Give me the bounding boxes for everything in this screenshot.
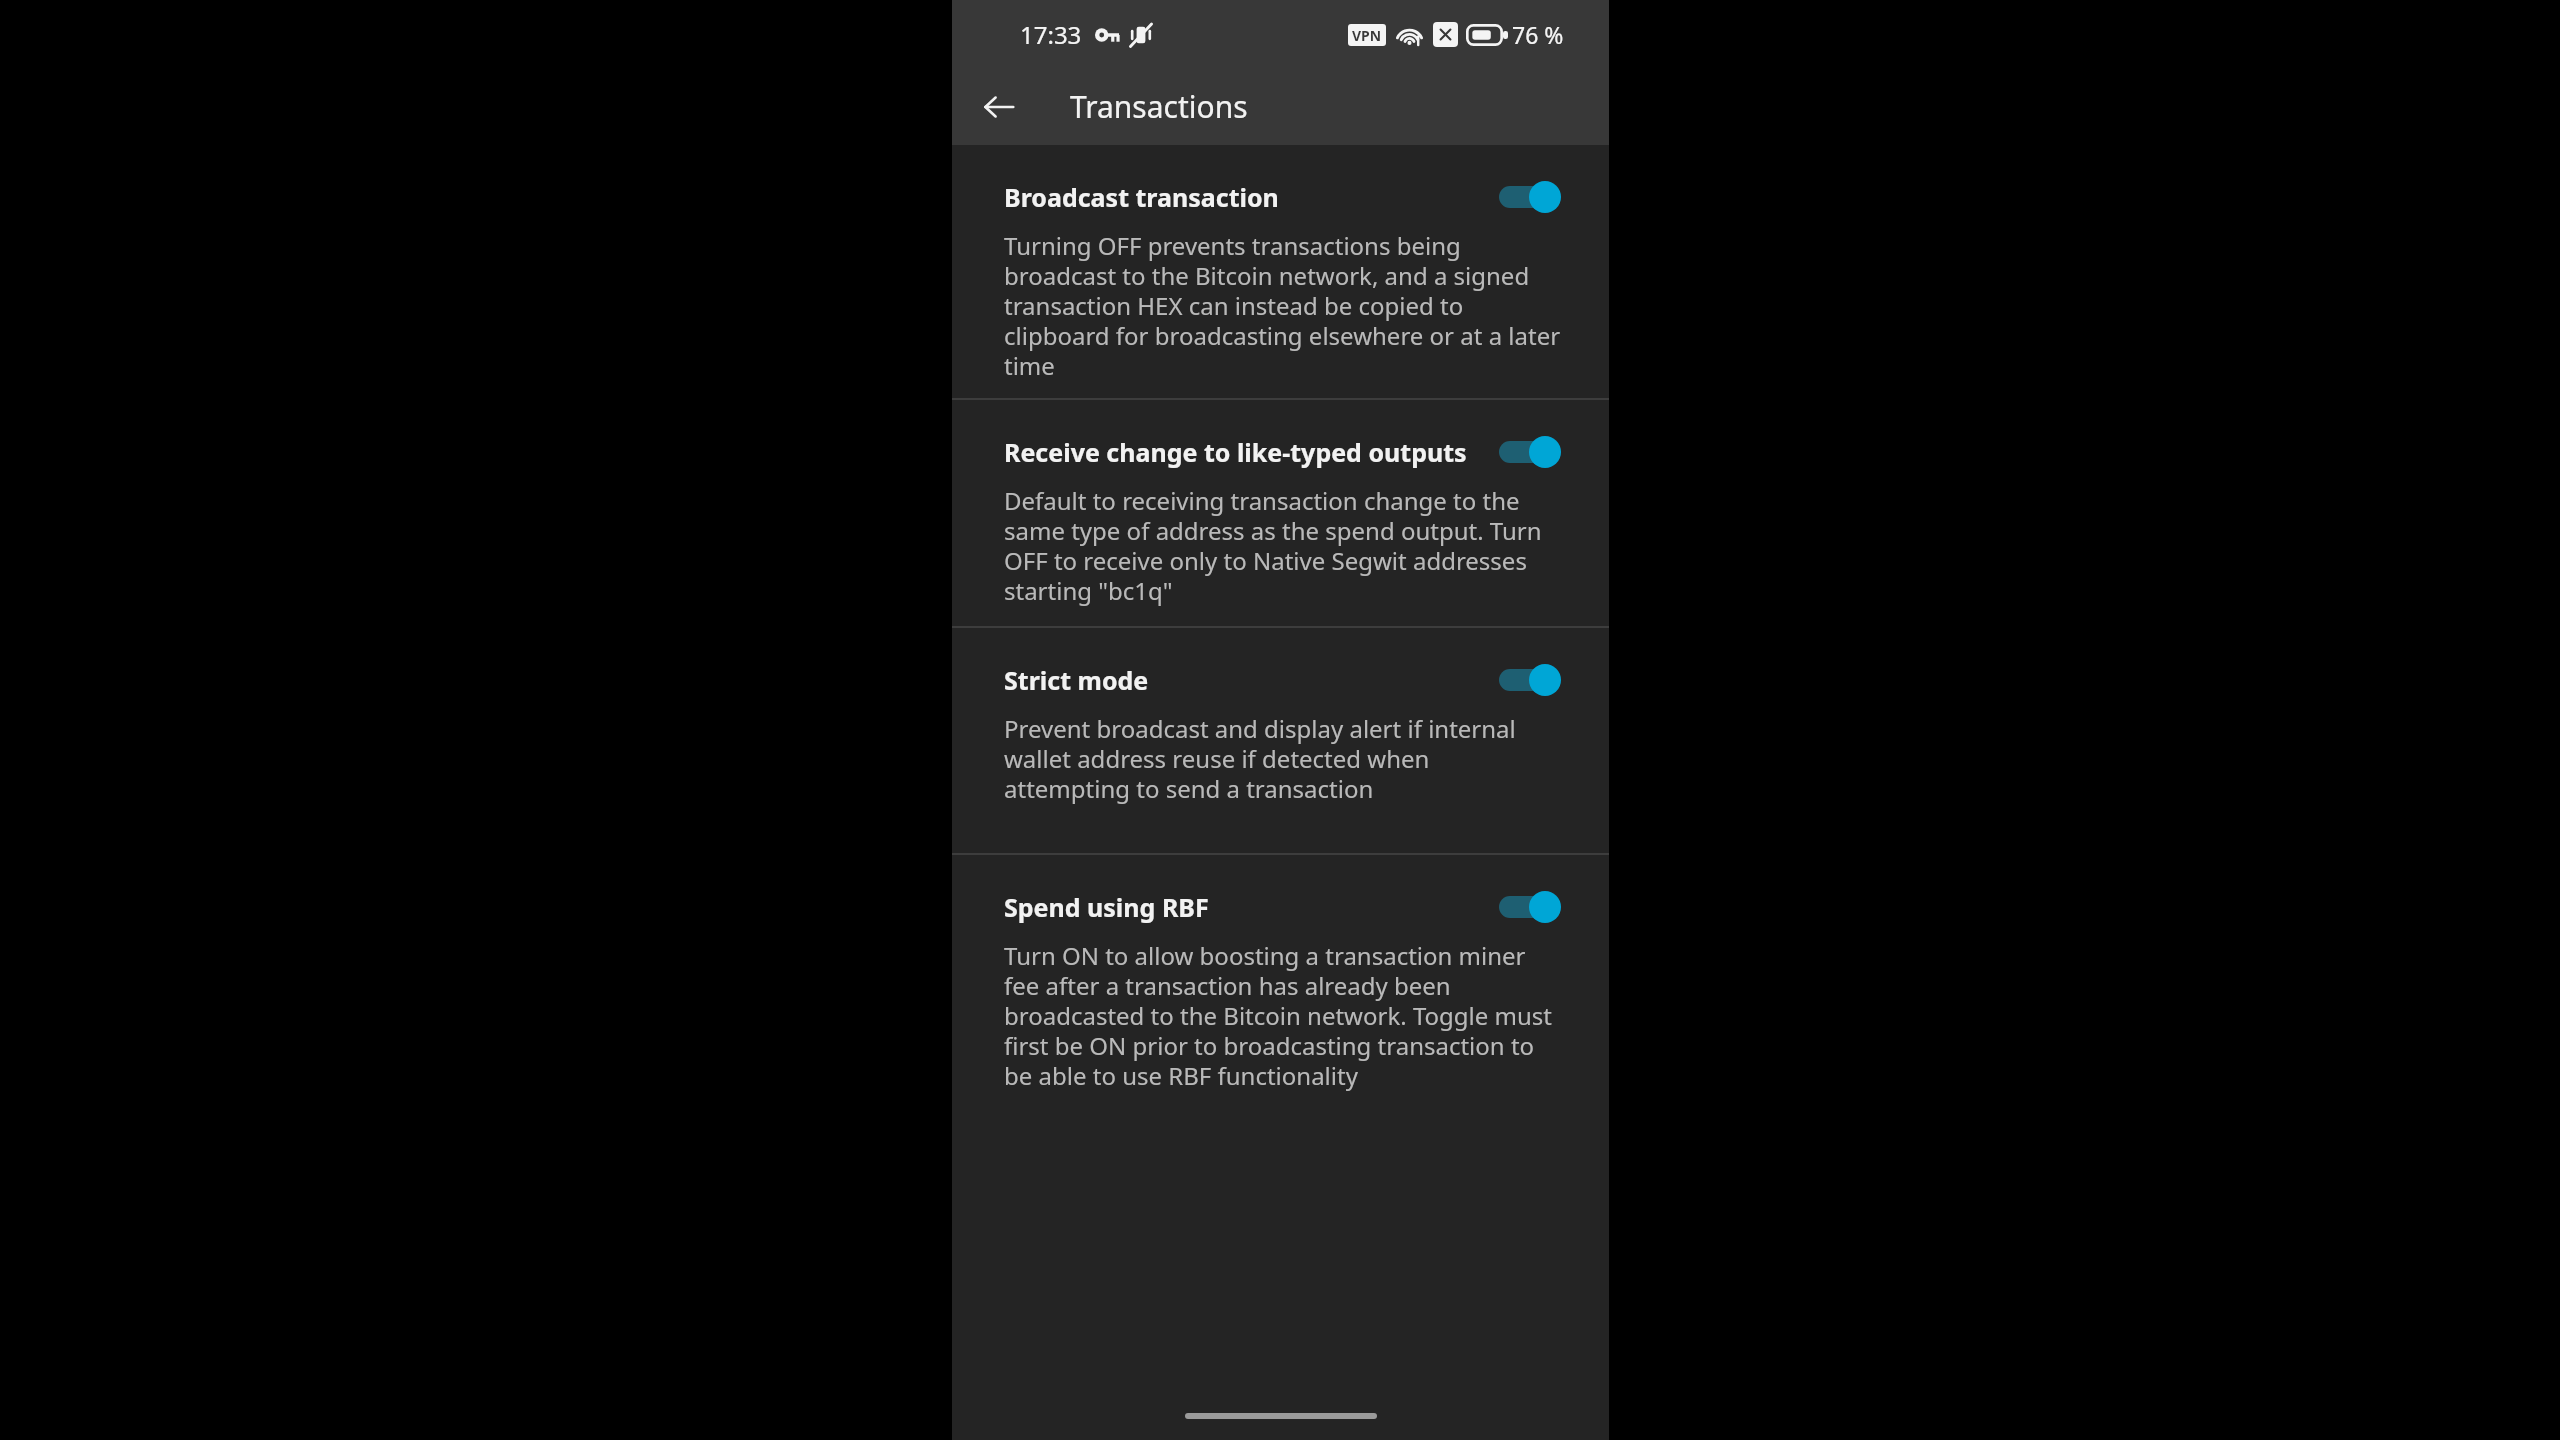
button[interactable]: Receive change to like-typed outputs tog… <box>1499 432 1561 472</box>
button[interactable]: Strict mode <box>952 628 1609 853</box>
button[interactable]: Receive change to like-typed outputs <box>952 400 1609 626</box>
button[interactable]: Back <box>973 81 1025 133</box>
button[interactable]: Strict mode toggle <box>1499 660 1561 700</box>
staticText: Turn ON to allow boosting a transaction … <box>1004 939 1561 1092</box>
staticText: Receive change to like-typed outputs <box>1004 435 1467 469</box>
staticText: Strict mode <box>1004 663 1149 697</box>
staticText: Spend using RBF <box>1004 890 1209 924</box>
staticText: 76 % <box>1512 19 1564 50</box>
staticText: Broadcast transaction <box>1004 180 1279 214</box>
button[interactable]: Broadcast transaction toggle <box>1499 177 1561 217</box>
button[interactable]: Spend using RBF toggle <box>1499 887 1561 927</box>
staticText: Turning OFF prevents transactions being … <box>1004 229 1561 382</box>
staticText: 17:33 <box>1020 18 1082 51</box>
staticText: Prevent broadcast and display alert if i… <box>1004 712 1561 805</box>
staticText: Transactions <box>1070 86 1248 127</box>
button[interactable]: Spend using RBF <box>952 855 1609 1105</box>
staticText: VPN <box>1352 26 1382 45</box>
staticText: Default to receiving transaction change … <box>1004 484 1561 607</box>
button[interactable]: Broadcast transaction <box>952 145 1609 398</box>
